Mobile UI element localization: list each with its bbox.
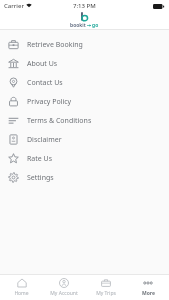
staticText: bookit xyxy=(70,22,86,29)
button[interactable]: More xyxy=(127,275,169,300)
staticText: Retrieve Booking xyxy=(27,40,83,50)
staticText: Settings xyxy=(27,173,54,183)
staticText: My Trips xyxy=(96,290,116,297)
staticText: Disclaimer xyxy=(27,135,62,145)
staticText: My Account xyxy=(50,290,78,297)
staticText: Carrier xyxy=(4,2,24,10)
button[interactable]: Privacy Policy xyxy=(0,92,169,111)
button[interactable]: Retrieve Booking xyxy=(0,35,169,54)
staticText: Rate Us xyxy=(27,154,53,164)
button[interactable]: Contact Us xyxy=(0,73,169,92)
staticText: Terms & Conditions xyxy=(27,116,92,126)
staticText: Privacy Policy xyxy=(27,97,72,107)
button[interactable]: My Trips xyxy=(85,275,127,300)
button[interactable]: Disclaimer xyxy=(0,130,169,149)
staticText: About Us xyxy=(27,59,58,69)
button[interactable]: Terms & Conditions xyxy=(0,111,169,130)
button[interactable]: My Account xyxy=(43,275,85,300)
button[interactable]: Settings xyxy=(0,168,169,187)
button[interactable]: Home xyxy=(0,275,43,300)
staticText: More xyxy=(142,290,155,297)
staticText: go xyxy=(92,22,99,29)
staticText: Home xyxy=(14,290,29,297)
staticText: 7:13 PM xyxy=(73,2,96,10)
staticText: Contact Us xyxy=(27,78,63,88)
button[interactable]: Rate Us xyxy=(0,149,169,168)
button[interactable]: About Us xyxy=(0,54,169,73)
